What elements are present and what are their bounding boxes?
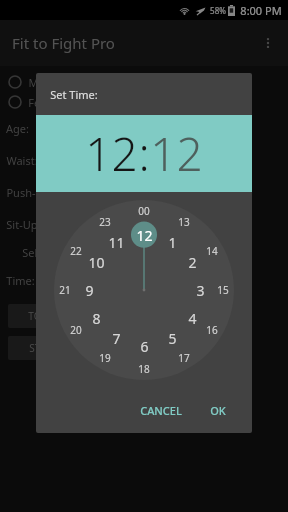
staticText: 13 (178, 215, 190, 229)
staticText: 8:00 PM (240, 3, 282, 18)
staticText: 17 (178, 351, 190, 365)
staticText: : (138, 122, 150, 185)
staticText: 12 (150, 122, 203, 185)
staticText: 4 (188, 309, 197, 328)
staticText: 14 (206, 244, 218, 258)
staticText: 11 (108, 233, 125, 252)
button[interactable]: 12 (150, 122, 203, 185)
staticText: Waist: (6, 153, 38, 168)
button[interactable]: TOTAL (8, 304, 78, 328)
button[interactable]: 12 (132, 223, 156, 247)
staticText: Push-Ups: (6, 185, 59, 200)
button[interactable]: 19 (95, 348, 115, 368)
button[interactable]: 7 (104, 326, 128, 350)
button[interactable]: Female (0, 92, 288, 112)
staticText: CANCEL (140, 403, 182, 418)
staticText: 12 (136, 226, 153, 245)
button[interactable]: 5 (160, 326, 184, 350)
staticText: 58% (210, 5, 226, 16)
staticText: TOTAL (28, 309, 58, 323)
button[interactable]: 20 (66, 320, 86, 340)
button[interactable]: 11 (104, 230, 128, 254)
button[interactable]: 13 (174, 212, 194, 232)
button[interactable]: 17 (174, 348, 194, 368)
button[interactable]: CANCEL (130, 397, 192, 424)
staticText: Fit to Fight Pro (12, 33, 115, 53)
staticText: 15 (217, 283, 229, 297)
button[interactable]: START (8, 336, 78, 360)
staticText: 18 (138, 362, 150, 376)
staticText: 3 (196, 281, 205, 300)
staticText: 19 (99, 351, 111, 365)
staticText: 12 (85, 122, 138, 185)
staticText: Female (28, 95, 66, 110)
staticText: Set Time: (50, 87, 98, 102)
button[interactable]: 8 (84, 306, 108, 330)
button[interactable]: 2 (180, 250, 204, 274)
staticText: Sit-Ups: (6, 217, 46, 232)
button[interactable]: 22 (66, 241, 86, 261)
staticText: 9 (85, 281, 94, 300)
button[interactable]: More options (248, 23, 288, 63)
staticText: START (29, 341, 58, 355)
staticText: 20 (70, 323, 82, 337)
button[interactable]: 00 (134, 201, 154, 221)
staticText: 10 (88, 253, 105, 272)
staticText: 5 (168, 329, 177, 348)
button[interactable]: 16 (202, 320, 222, 340)
button[interactable]: 10 (84, 250, 108, 274)
button[interactable]: 15 (213, 280, 233, 300)
staticText: 7 (112, 329, 121, 348)
staticText: 1 (168, 233, 177, 252)
button[interactable]: 23 (95, 212, 115, 232)
button[interactable]: Male (0, 72, 288, 92)
button[interactable]: 4 (180, 306, 204, 330)
staticText: 23 (99, 215, 111, 229)
staticText: 21 (59, 283, 71, 297)
button[interactable]: 9 (77, 278, 101, 302)
staticText: Age: (6, 121, 29, 136)
button[interactable]: 21 (55, 280, 75, 300)
staticText: 16 (206, 323, 218, 337)
button[interactable]: 6 (132, 334, 156, 358)
button[interactable]: 12 (85, 122, 138, 185)
staticText: 00 (138, 204, 150, 218)
staticText: 6 (140, 337, 149, 356)
staticText: Male (28, 75, 54, 90)
staticText: Time: (6, 273, 35, 288)
staticText: 22 (70, 244, 82, 258)
button[interactable]: 1 (160, 230, 184, 254)
button[interactable]: OK (200, 397, 236, 424)
staticText: Select (22, 245, 53, 260)
button[interactable]: 14 (202, 241, 222, 261)
button[interactable]: 3 (188, 278, 212, 302)
staticText: OK (210, 403, 226, 418)
staticText: 8 (92, 309, 101, 328)
button[interactable]: 18 (134, 359, 154, 379)
staticText: 2 (188, 253, 197, 272)
